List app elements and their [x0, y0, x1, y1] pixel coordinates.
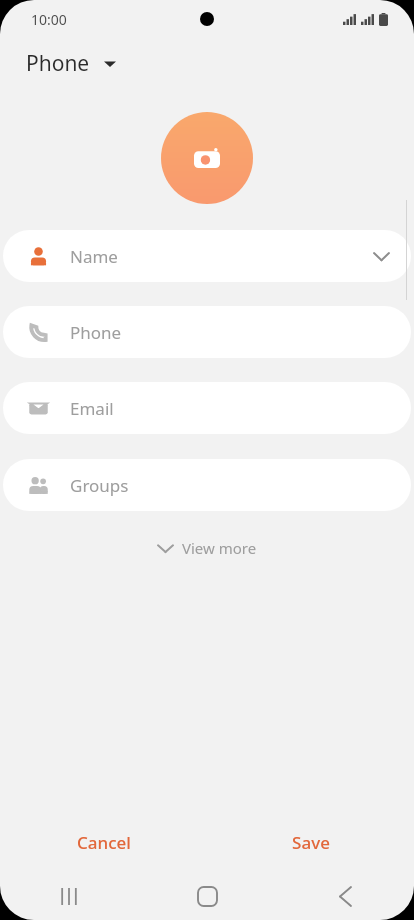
staticText: Cancel	[77, 831, 131, 854]
button[interactable]: Phone	[3, 306, 411, 358]
staticText: Groups	[70, 474, 129, 497]
staticText: Save	[292, 831, 330, 854]
button[interactable]: Add photo	[161, 112, 253, 204]
button[interactable]: Cancel	[0, 812, 207, 872]
staticText: 10:00	[31, 10, 67, 29]
staticText: View more	[182, 538, 257, 558]
button[interactable]: Phone	[26, 45, 126, 82]
button[interactable]: Back	[276, 872, 414, 920]
button[interactable]: Home	[138, 872, 276, 920]
staticText: Phone	[70, 321, 122, 344]
staticText: Phone	[26, 49, 90, 78]
button[interactable]: Save	[207, 812, 414, 872]
staticText: Name	[70, 245, 118, 268]
button[interactable]: Groups	[3, 459, 411, 511]
button[interactable]: Email	[3, 382, 411, 434]
button[interactable]: Recent apps	[0, 872, 138, 920]
button[interactable]: Name	[3, 230, 411, 282]
button[interactable]: View more	[142, 530, 273, 566]
staticText: Email	[70, 397, 114, 420]
